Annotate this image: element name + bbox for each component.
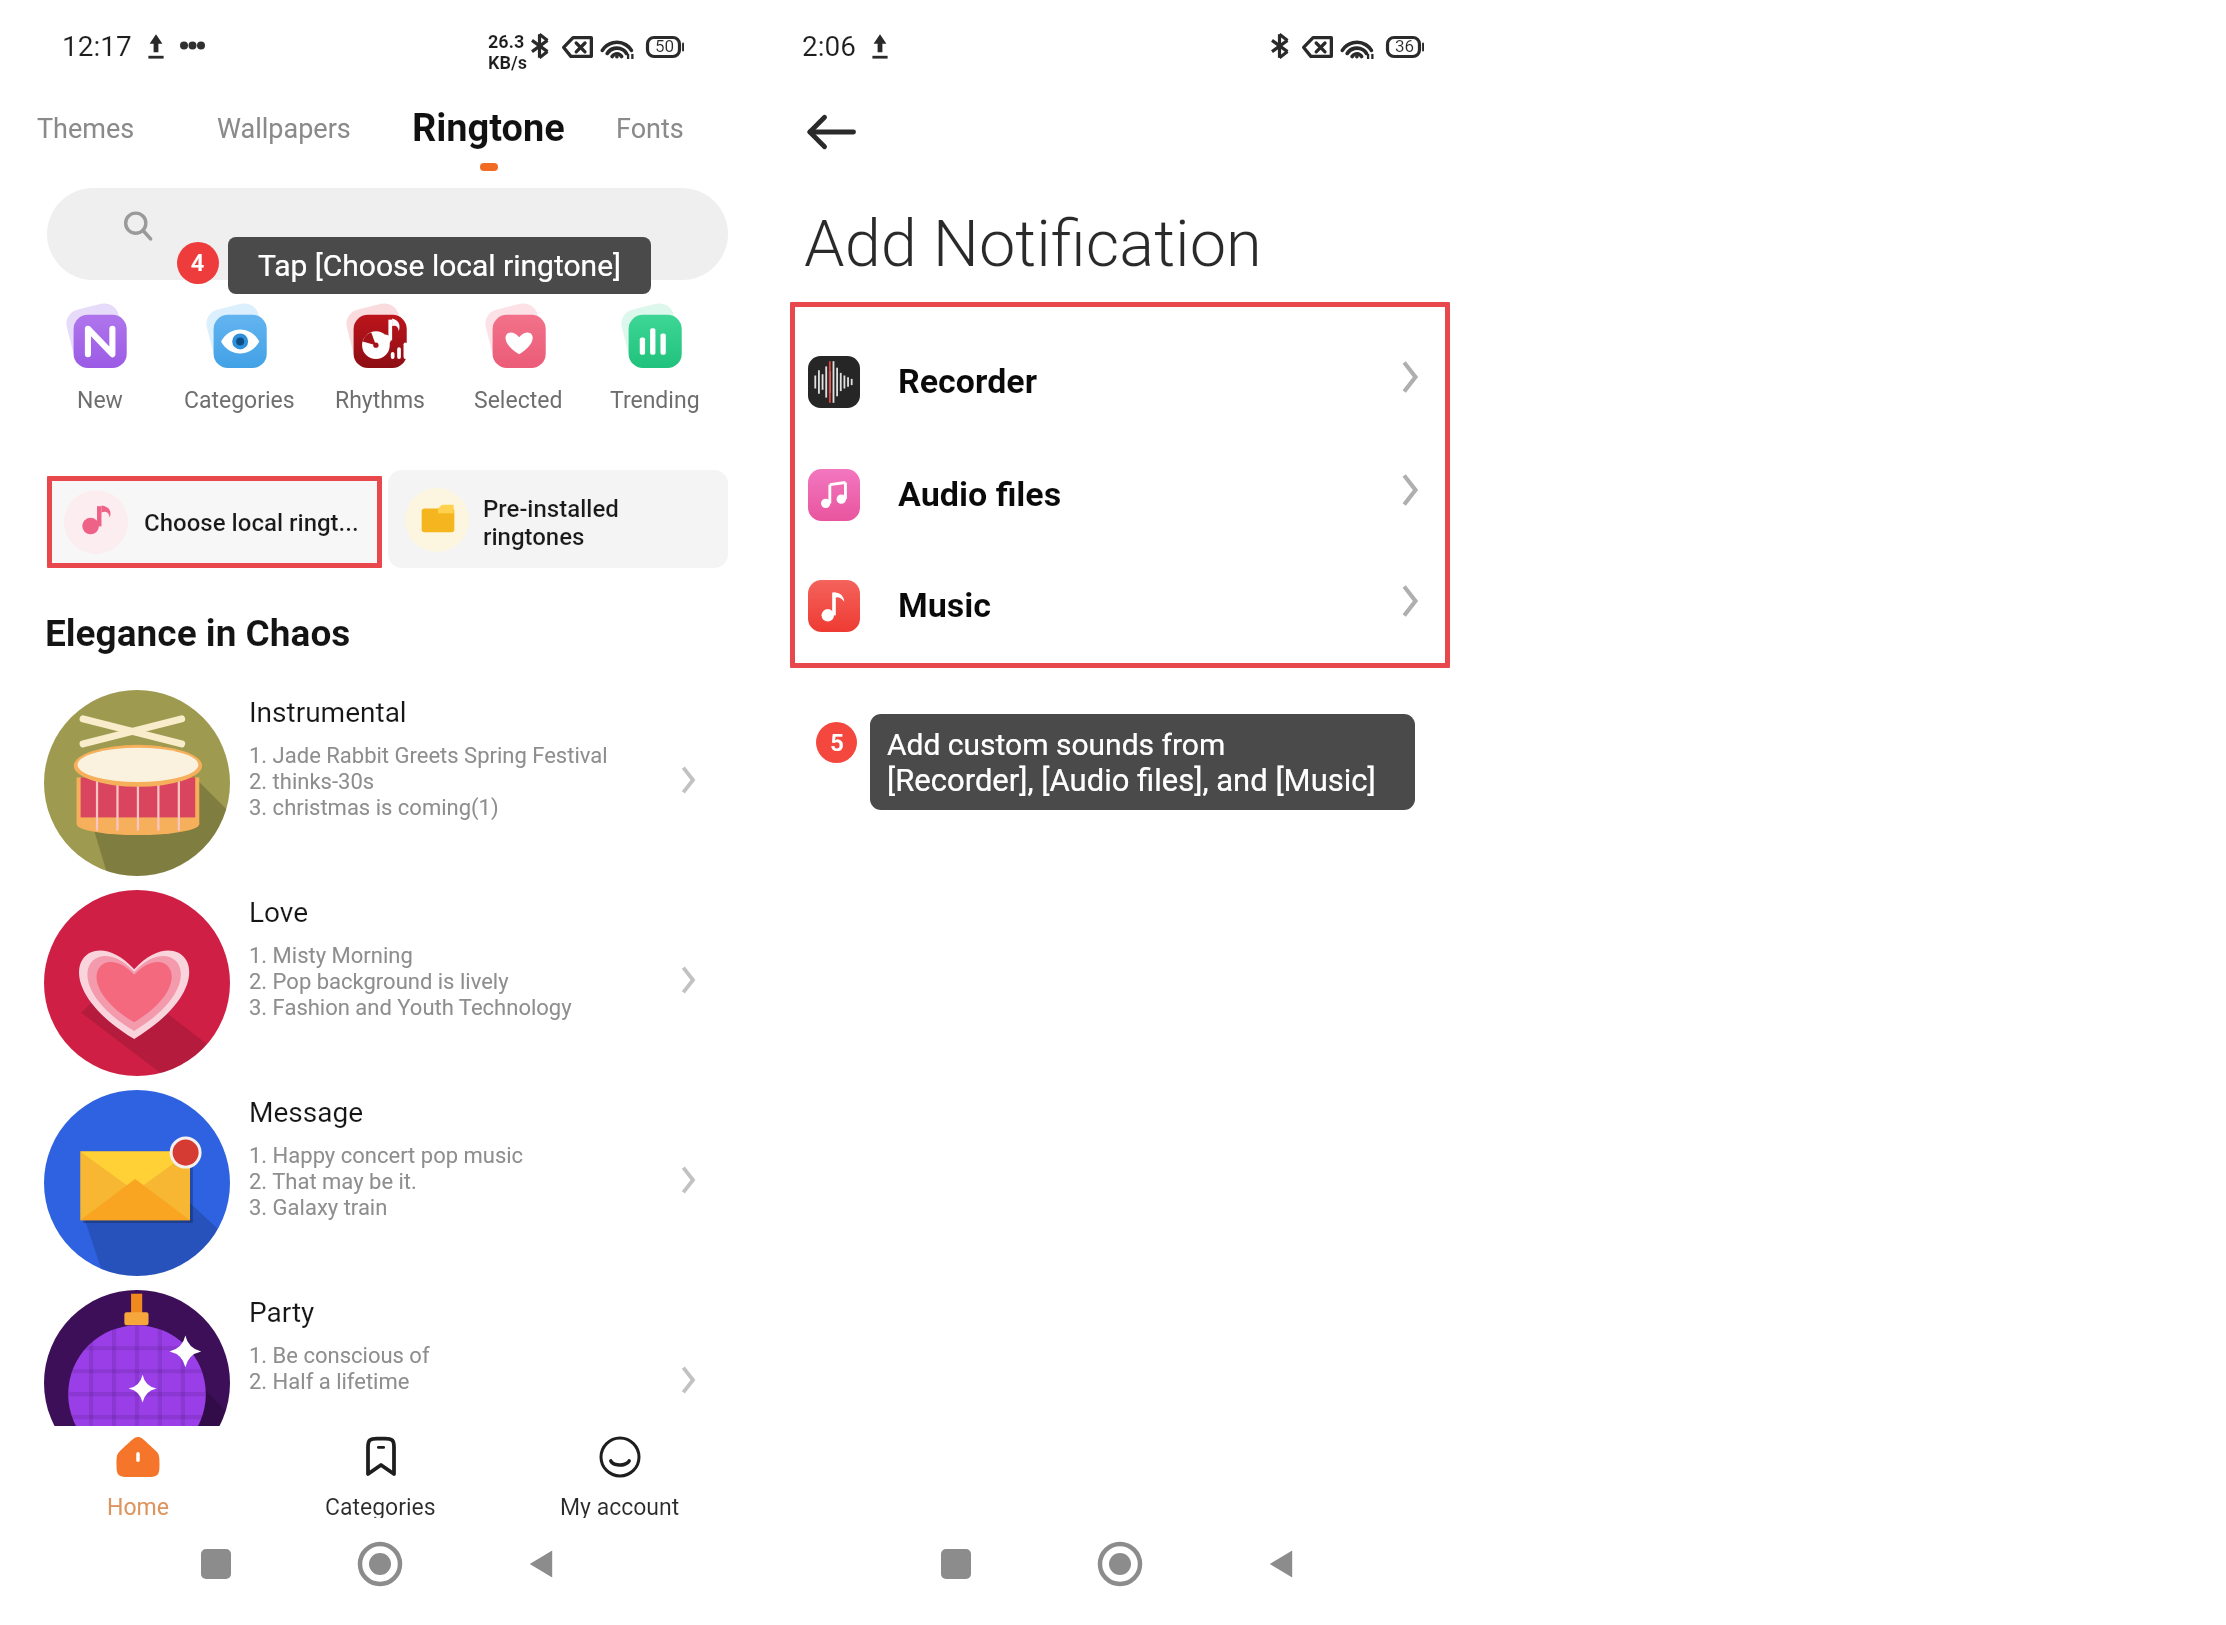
button[interactable]: Audio files [808, 443, 1468, 547]
staticText: New [77, 387, 123, 414]
button[interactable]: My account [530, 1426, 710, 1520]
button[interactable]: Selected [450, 302, 586, 414]
staticText: Audio files [898, 474, 1062, 514]
staticText: ringtones [483, 523, 585, 551]
staticText: 3. Galaxy train [249, 1195, 388, 1221]
staticText: 1. Misty Morning [249, 943, 413, 969]
button[interactable]: Home [352, 1536, 408, 1592]
staticText: Pre-installed [483, 495, 619, 523]
button[interactable]: Back [518, 1540, 566, 1588]
button[interactable]: Home [1092, 1536, 1148, 1592]
button[interactable]: Trending [587, 302, 723, 414]
staticText: 26.3 [488, 31, 525, 52]
staticText: 50 [655, 36, 675, 56]
button[interactable]: Back [791, 92, 871, 172]
button[interactable]: Themes [10, 98, 162, 160]
button[interactable]: Recents [194, 1542, 238, 1586]
staticText: Add Notification [804, 206, 1262, 282]
staticText: [Recorder], [Audio files], and [Music] [887, 762, 1376, 798]
staticText: Party [249, 1296, 315, 1329]
staticText: 4 [191, 250, 205, 277]
staticText: My account [560, 1494, 680, 1520]
staticText: 2. Pop background is lively [249, 969, 509, 995]
staticText: Recorder [898, 361, 1038, 401]
button[interactable]: Pre-installed [388, 470, 728, 568]
staticText: Add custom sounds from [887, 727, 1226, 762]
staticText: Categories [184, 387, 295, 414]
staticText: Instrumental [249, 696, 407, 729]
button[interactable]: Wallpapers [186, 98, 382, 160]
staticText: 3. christmas is coming(1) [249, 795, 499, 821]
button[interactable]: Party [0, 1288, 740, 1426]
staticText: 3. Fashion and Youth Technology [249, 995, 572, 1021]
staticText: 2. That may be it. [249, 1169, 417, 1195]
button[interactable]: Recents [934, 1542, 978, 1586]
staticText: Trending [610, 387, 700, 414]
staticText: Selected [474, 387, 563, 414]
button[interactable]: Love [0, 888, 740, 1088]
button[interactable]: Back [1258, 1540, 1306, 1588]
staticText: 36 [1395, 36, 1415, 56]
staticText: Home [107, 1494, 169, 1520]
staticText: Music [898, 585, 992, 625]
button[interactable]: Recorder [808, 330, 1468, 434]
staticText: 1. Jade Rabbit Greets Spring Festival [249, 743, 608, 769]
staticText: 2. thinks-30s [249, 769, 375, 795]
button[interactable]: Rhythms [312, 302, 448, 414]
button[interactable]: Categories [290, 1426, 470, 1520]
button[interactable]: Home [48, 1426, 228, 1520]
staticText: Love [249, 896, 309, 929]
button[interactable]: Music [808, 554, 1468, 658]
button[interactable]: Choose local ringt... [50, 479, 379, 565]
staticText: Choose local ringt... [144, 509, 359, 537]
staticText: 1. Happy concert pop music [249, 1143, 524, 1169]
staticText: Themes [37, 113, 135, 145]
button[interactable]: New [32, 302, 168, 414]
staticText: 12:17 [62, 30, 132, 63]
staticText: Ringtone [412, 106, 565, 151]
button[interactable]: Message [0, 1088, 740, 1288]
button[interactable]: Ringtone [395, 92, 581, 174]
staticText: Fonts [616, 113, 684, 145]
button[interactable]: Fonts [590, 98, 710, 160]
staticText: Wallpapers [217, 113, 351, 145]
staticText: 1. Be conscious of [249, 1343, 430, 1369]
staticText: 2. Half a lifetime [249, 1369, 410, 1395]
staticText: Categories [325, 1494, 436, 1520]
staticText: Message [249, 1096, 363, 1129]
staticText: Rhythms [335, 387, 425, 414]
staticText: 5 [830, 729, 844, 757]
staticText: Elegance in Chaos [45, 612, 351, 655]
button[interactable]: Search [47, 188, 728, 280]
staticText: Tap [Choose local ringtone] [258, 248, 622, 283]
button[interactable]: Instrumental [0, 688, 740, 888]
button[interactable]: Categories [171, 302, 307, 414]
staticText: 2:06 [802, 30, 856, 63]
staticText: KB/s [488, 52, 527, 73]
